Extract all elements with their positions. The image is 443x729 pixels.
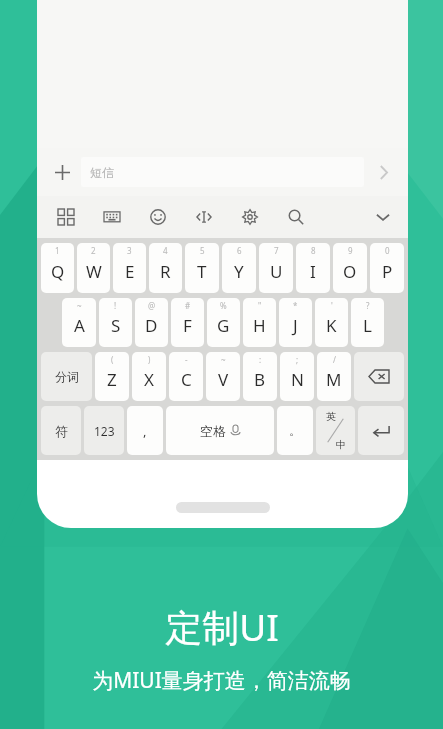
button[interactable]: : xyxy=(243,352,277,401)
button[interactable]: Add attachment xyxy=(43,153,81,191)
staticText: V xyxy=(218,368,229,391)
staticText: 1 xyxy=(55,245,60,256)
button[interactable]: 9 xyxy=(333,243,367,293)
staticText: 空格 xyxy=(200,423,226,439)
button[interactable]: 8 xyxy=(296,243,330,293)
button[interactable]: ) xyxy=(132,352,166,401)
button[interactable]: 0 xyxy=(370,243,404,293)
staticText: * xyxy=(293,300,298,311)
button[interactable]: 英 xyxy=(316,406,355,455)
staticText: P xyxy=(382,260,393,283)
staticText: 8 xyxy=(311,245,316,256)
button[interactable]: 空格 xyxy=(166,406,274,455)
staticText: ; xyxy=(296,354,299,365)
staticText: N xyxy=(291,368,304,391)
button[interactable]: 6 xyxy=(222,243,256,293)
staticText: @ xyxy=(148,300,156,311)
staticText: Z xyxy=(107,368,117,391)
staticText: 符 xyxy=(55,423,68,439)
staticText: T xyxy=(197,260,207,283)
staticText: K xyxy=(326,314,337,337)
button[interactable]: Send xyxy=(364,153,402,191)
staticText: A xyxy=(74,314,85,337)
button[interactable]: / xyxy=(317,352,351,401)
staticText: ? xyxy=(366,300,370,311)
button[interactable]: # xyxy=(171,298,204,347)
staticText: U xyxy=(270,260,283,283)
staticText: G xyxy=(217,314,230,337)
staticText: 短信 xyxy=(90,165,114,180)
button[interactable]: 1 xyxy=(41,243,74,293)
staticText: H xyxy=(253,314,266,337)
staticText: / xyxy=(333,354,336,365)
button[interactable]: Collapse xyxy=(368,202,398,232)
staticText: D xyxy=(145,314,158,337)
staticText: # xyxy=(185,300,191,311)
button[interactable]: 。 xyxy=(277,406,313,455)
staticText: ~ xyxy=(77,300,82,311)
staticText: I xyxy=(310,260,316,283)
staticText: 5 xyxy=(200,245,205,256)
staticText: 6 xyxy=(237,245,242,256)
button[interactable]: Panel xyxy=(51,202,81,232)
button[interactable]: ! xyxy=(99,298,132,347)
staticText: 定制UI xyxy=(165,601,279,652)
button[interactable]: ( xyxy=(95,352,129,401)
button[interactable]: Keyboard xyxy=(97,202,127,232)
button[interactable]: 符 xyxy=(41,406,81,455)
button[interactable]: 短信 xyxy=(81,157,364,187)
staticText: 0 xyxy=(385,245,390,256)
button[interactable]: , xyxy=(127,406,163,455)
staticText: 9 xyxy=(348,245,353,256)
button[interactable]: 123 xyxy=(84,406,124,455)
staticText: 。 xyxy=(289,423,301,438)
button[interactable]: % xyxy=(207,298,240,347)
staticText: C xyxy=(181,368,192,391)
staticText: F xyxy=(183,314,192,337)
button[interactable]: - xyxy=(169,352,203,401)
staticText: ( xyxy=(111,354,114,365)
staticText: 7 xyxy=(274,245,279,256)
staticText: 为MIUI量身打造，简洁流畅 xyxy=(92,666,351,695)
staticText: 4 xyxy=(163,245,168,256)
staticText: 2 xyxy=(91,245,96,256)
button[interactable]: @ xyxy=(135,298,168,347)
button[interactable]: 5 xyxy=(185,243,219,293)
staticText: 英 xyxy=(326,410,336,423)
button[interactable]: ' xyxy=(315,298,348,347)
button[interactable]: 4 xyxy=(149,243,182,293)
staticText: Y xyxy=(234,260,244,283)
staticText: - xyxy=(185,354,188,365)
button[interactable]: Search xyxy=(281,202,311,232)
button[interactable]: Cursor xyxy=(189,202,219,232)
button[interactable]: Backspace xyxy=(354,352,404,401)
staticText: B xyxy=(254,368,266,391)
staticText: 中 xyxy=(336,438,346,451)
button[interactable]: ~ xyxy=(62,298,96,347)
staticText: 3 xyxy=(127,245,132,256)
button[interactable]: 3 xyxy=(113,243,146,293)
button[interactable]: Settings xyxy=(235,202,265,232)
staticText: 分词 xyxy=(55,369,79,384)
staticText: S xyxy=(111,314,121,337)
button[interactable]: ? xyxy=(351,298,384,347)
staticText: , xyxy=(143,422,147,440)
button[interactable]: Emoji xyxy=(143,202,173,232)
button[interactable]: Enter xyxy=(358,406,404,455)
staticText: E xyxy=(125,260,135,283)
button[interactable]: * xyxy=(279,298,312,347)
staticText: ) xyxy=(148,354,151,365)
staticText: % xyxy=(220,300,227,311)
staticText: L xyxy=(363,314,372,337)
staticText: X xyxy=(144,368,154,391)
staticText: ! xyxy=(114,300,117,311)
button[interactable]: 2 xyxy=(77,243,110,293)
staticText: ~ xyxy=(221,354,226,365)
button[interactable]: ; xyxy=(280,352,314,401)
staticText: : xyxy=(259,354,262,365)
button[interactable]: ~ xyxy=(206,352,240,401)
button[interactable]: 7 xyxy=(259,243,293,293)
button[interactable]: 分词 xyxy=(41,352,92,401)
staticText: Q xyxy=(51,260,65,283)
button[interactable]: " xyxy=(243,298,276,347)
